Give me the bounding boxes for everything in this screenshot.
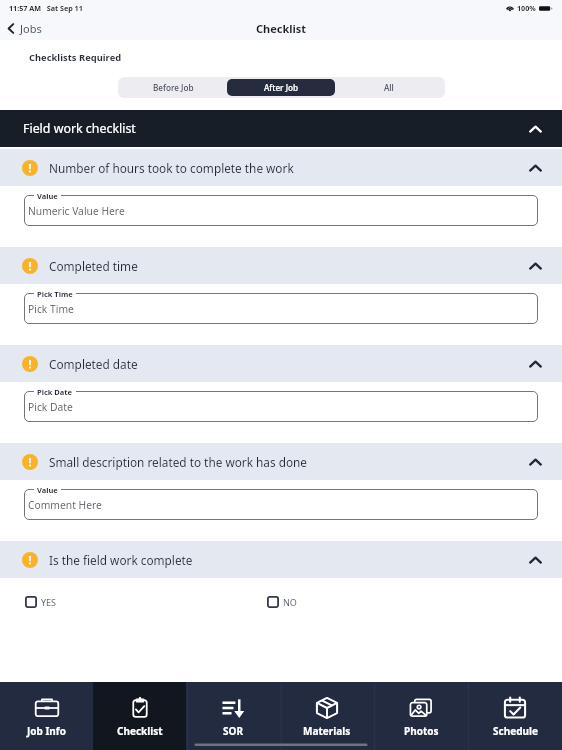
button[interactable]: YES bbox=[21, 592, 61, 612]
other: Collapse bbox=[529, 260, 542, 271]
button[interactable]: Jobs bbox=[0, 21, 52, 36]
staticText: Field work checklist bbox=[23, 120, 136, 137]
button[interactable]: Pick Time bbox=[24, 293, 538, 324]
button[interactable]: Completed time bbox=[0, 247, 562, 284]
other: Collapse bbox=[529, 123, 542, 134]
button[interactable]: Checklist bbox=[93, 682, 186, 750]
staticText: Is the field work complete bbox=[49, 552, 193, 568]
button[interactable]: Numeric Value Here bbox=[24, 195, 538, 226]
staticText: Comment Here bbox=[28, 498, 102, 512]
staticText: Materials bbox=[303, 724, 351, 738]
staticText: Pick Time bbox=[37, 289, 73, 299]
button[interactable]: Completed date bbox=[0, 345, 562, 382]
staticText: Job Info bbox=[27, 724, 66, 738]
staticText: Checklists Required bbox=[29, 51, 122, 64]
staticText: Pick Time bbox=[28, 302, 74, 316]
staticText: Completed time bbox=[49, 258, 138, 274]
staticText: Before Job bbox=[153, 82, 194, 93]
button[interactable]: NO bbox=[263, 592, 301, 612]
staticText: Value bbox=[37, 191, 58, 201]
button[interactable]: Schedule bbox=[468, 682, 562, 750]
button[interactable]: Materials bbox=[280, 682, 374, 750]
staticText: Small description related to the work ha… bbox=[49, 454, 307, 470]
staticText: Checklist bbox=[117, 724, 163, 738]
button[interactable]: Before Job bbox=[120, 79, 227, 96]
button[interactable]: SOR bbox=[186, 682, 280, 750]
button[interactable]: Small description related to the work ha… bbox=[0, 443, 562, 480]
button[interactable]: Number of hours took to complete the wor… bbox=[0, 149, 562, 186]
staticText: Schedule bbox=[493, 724, 538, 738]
button[interactable]: Comment Here bbox=[24, 489, 538, 520]
staticText: Photos bbox=[404, 724, 439, 738]
staticText: Completed date bbox=[49, 356, 138, 372]
button[interactable]: After Job bbox=[227, 79, 335, 96]
button[interactable]: Is the field work complete bbox=[0, 541, 562, 578]
staticText: Checklist bbox=[256, 21, 307, 36]
staticText: Jobs bbox=[20, 21, 42, 36]
button[interactable]: All bbox=[335, 79, 443, 96]
staticText: Pick Date bbox=[37, 387, 73, 397]
other: Collapse bbox=[529, 456, 542, 467]
staticText: Number of hours took to complete the wor… bbox=[49, 160, 294, 176]
button[interactable]: Field work checklist bbox=[0, 110, 562, 147]
staticText: 11:57 AM Sat Sep 11 bbox=[9, 3, 83, 13]
staticText: NO bbox=[283, 596, 297, 608]
staticText: YES bbox=[41, 596, 57, 608]
staticText: Numeric Value Here bbox=[28, 204, 125, 218]
staticText: All bbox=[384, 82, 394, 93]
staticText: 100% bbox=[517, 3, 536, 13]
other: Collapse bbox=[529, 554, 542, 565]
staticText: Pick Date bbox=[28, 400, 73, 414]
staticText: Value bbox=[37, 485, 58, 495]
button[interactable]: Job Info bbox=[0, 682, 93, 750]
staticText: After Job bbox=[264, 82, 299, 93]
other: Collapse bbox=[529, 162, 542, 173]
other: Collapse bbox=[529, 358, 542, 369]
button[interactable]: Photos bbox=[374, 682, 468, 750]
staticText: SOR bbox=[223, 724, 243, 738]
button[interactable]: Pick Date bbox=[24, 391, 538, 422]
